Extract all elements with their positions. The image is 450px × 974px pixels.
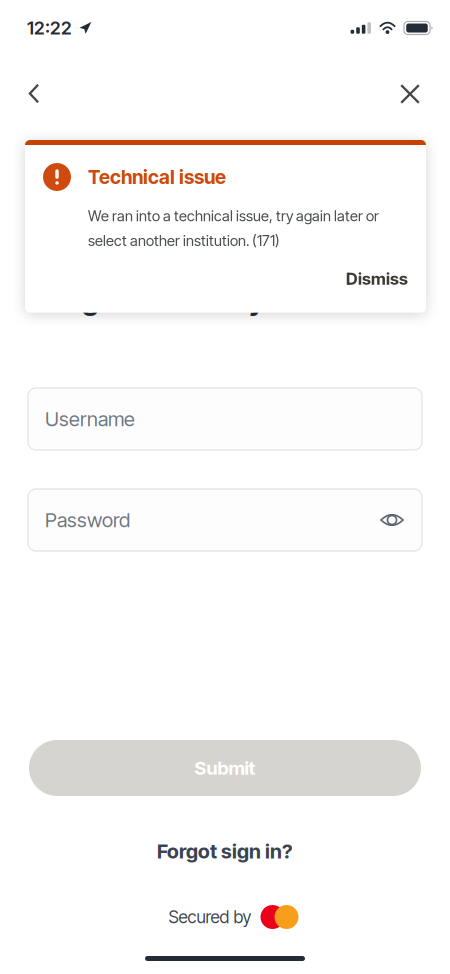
staticText: Secured by (168, 906, 251, 927)
staticText: Dismiss (346, 268, 408, 289)
button[interactable]: Back (12, 72, 56, 116)
staticText: Technical issue (88, 165, 226, 189)
button[interactable]: Show password (373, 501, 411, 539)
button[interactable]: Submit (29, 740, 421, 796)
button[interactable]: Close (388, 72, 432, 116)
staticText: Enter your credentials to sign in secure… (28, 249, 315, 317)
button[interactable]: Dismiss (343, 263, 408, 294)
staticText: Password (45, 508, 130, 532)
staticText: Submit (194, 757, 255, 779)
staticText: select another institution. (171) (88, 232, 280, 249)
staticText: 12:22 (27, 17, 72, 39)
staticText: We ran into a technical issue, try again… (88, 207, 379, 225)
staticText: Username (45, 407, 135, 431)
button[interactable]: Forgot sign in? (157, 835, 293, 867)
staticText: Forgot sign in? (157, 839, 293, 863)
